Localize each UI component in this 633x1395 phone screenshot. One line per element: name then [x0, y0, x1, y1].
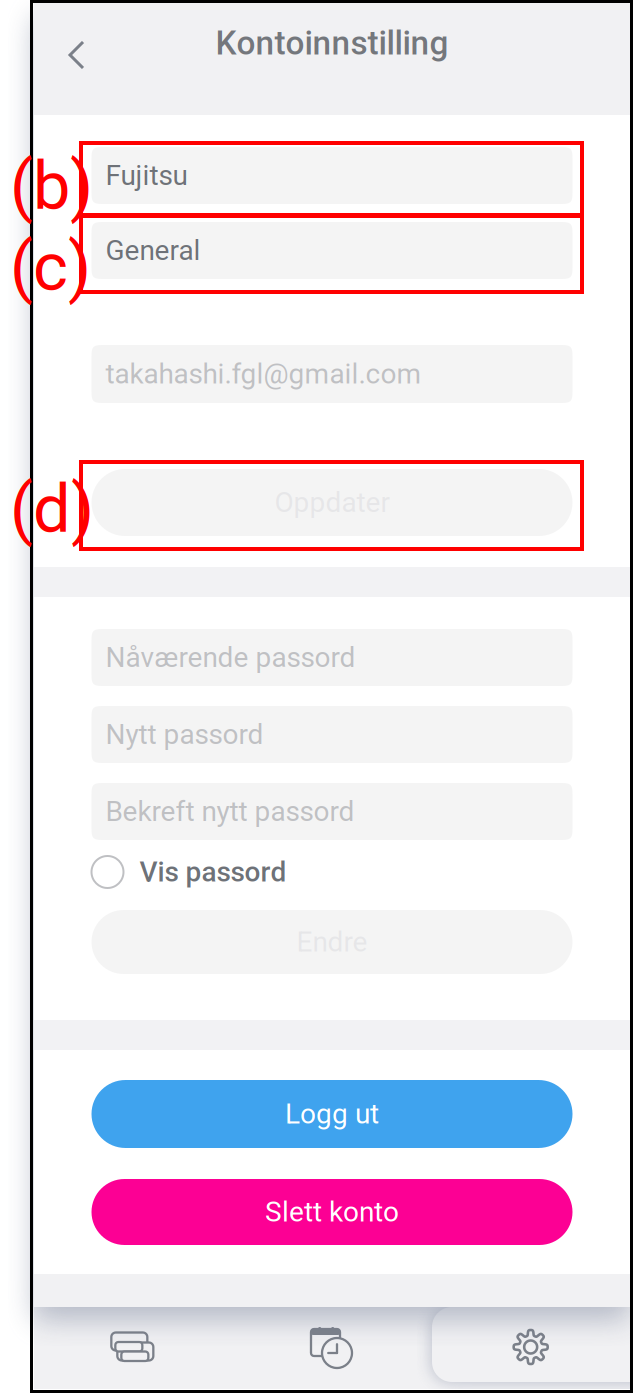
- staticText: Slett konto: [265, 1196, 399, 1228]
- button[interactable]: Printers: [34, 1307, 233, 1387]
- staticText: Nåværende passord: [105, 641, 355, 674]
- button[interactable]: Vis passord: [91, 855, 572, 889]
- staticText: takahashi.fgl@gmail.com: [105, 358, 421, 390]
- staticText: Oppdater: [274, 486, 389, 519]
- staticText: Fujitsu: [105, 159, 187, 192]
- staticText: Vis passord: [139, 856, 286, 888]
- staticText: Kontoinnstilling: [215, 23, 448, 63]
- button[interactable]: Logg ut: [91, 1080, 572, 1148]
- staticText: (b): [10, 147, 93, 225]
- button[interactable]: Slett konto: [91, 1179, 572, 1245]
- staticText: Bekreft nytt passord: [105, 795, 354, 828]
- staticText: Logg ut: [285, 1098, 379, 1130]
- button[interactable]: History: [233, 1307, 431, 1387]
- staticText: Endre: [296, 926, 367, 958]
- button[interactable]: Settings: [431, 1307, 630, 1387]
- button[interactable]: Back: [46, 24, 108, 86]
- staticText: Nytt passord: [105, 718, 263, 751]
- staticText: General: [105, 234, 200, 267]
- staticText: (d): [10, 470, 94, 548]
- staticText: (c): [10, 228, 91, 306]
